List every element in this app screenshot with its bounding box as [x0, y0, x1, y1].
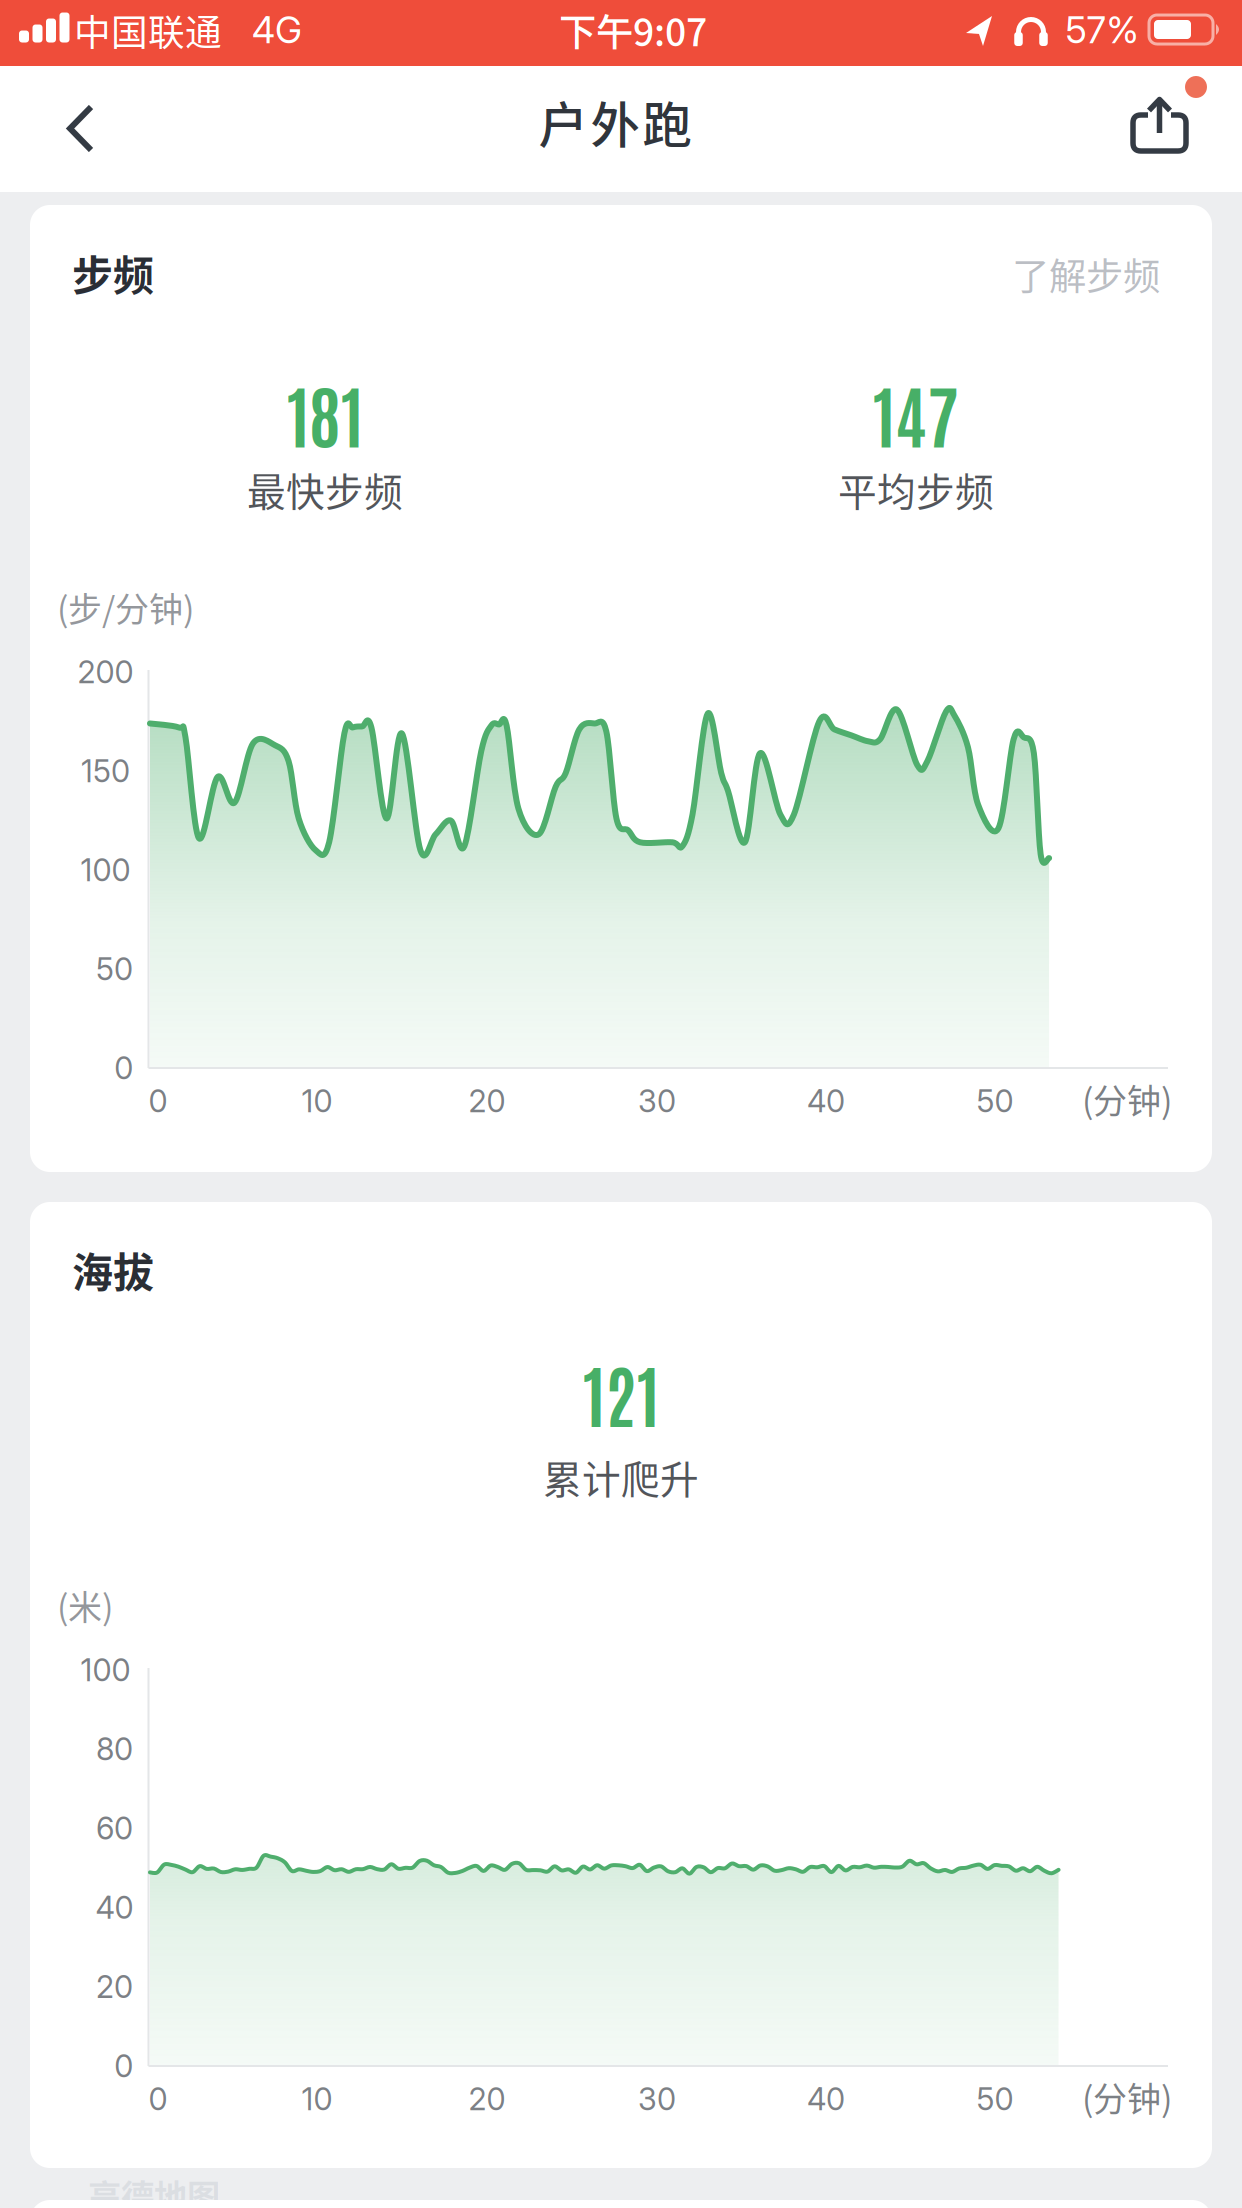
staticText: 150: [81, 752, 130, 789]
staticText: 最快步频: [247, 461, 403, 517]
staticText: 平均步频: [838, 461, 994, 517]
staticText: 40: [807, 2080, 845, 2117]
staticText: 步频: [72, 243, 154, 302]
staticText: 60: [96, 1810, 133, 1847]
staticText: 10: [301, 1082, 332, 1119]
staticText: (分钟): [1082, 2072, 1172, 2122]
staticText: 20: [468, 2080, 505, 2117]
staticText: 下午9:07: [559, 3, 707, 57]
staticText: 147: [873, 369, 959, 457]
staticText: 0: [148, 2080, 167, 2117]
button[interactable]: 了解步频: [1012, 247, 1160, 301]
staticText: 80: [96, 1731, 133, 1768]
staticText: 户外跑: [538, 86, 691, 157]
button[interactable]: Share: [1104, 66, 1215, 192]
staticText: 20: [468, 1082, 505, 1119]
staticText: 100: [80, 1651, 130, 1688]
staticText: 20: [96, 1968, 133, 2005]
staticText: 10: [301, 2080, 332, 2117]
staticText: 181: [287, 369, 363, 457]
staticText: (步/分钟): [57, 582, 194, 632]
staticText: 海拔: [72, 1240, 154, 1299]
staticText: 30: [638, 1082, 676, 1119]
staticText: 40: [96, 1889, 134, 1926]
staticText: 0: [148, 1082, 167, 1119]
staticText: 高德地图: [88, 2170, 220, 2208]
button[interactable]: Back: [0, 66, 130, 192]
staticText: 0: [114, 2047, 133, 2084]
staticText: 中国联通: [74, 3, 222, 57]
staticText: 0: [114, 1049, 133, 1086]
staticText: 100: [80, 851, 130, 888]
staticText: 4G: [252, 8, 302, 52]
staticText: 50: [976, 1082, 1013, 1119]
staticText: 57%: [1065, 8, 1138, 52]
staticText: (分钟): [1082, 1074, 1172, 1124]
staticText: 40: [807, 1082, 845, 1119]
staticText: 200: [77, 653, 133, 690]
staticText: 30: [638, 2080, 676, 2117]
staticText: 50: [96, 950, 133, 987]
staticText: (米): [57, 1580, 113, 1630]
staticText: 了解步频: [1012, 247, 1160, 301]
staticText: 121: [583, 1348, 659, 1436]
staticText: 50: [976, 2080, 1013, 2117]
staticText: 累计爬升: [543, 1449, 699, 1505]
